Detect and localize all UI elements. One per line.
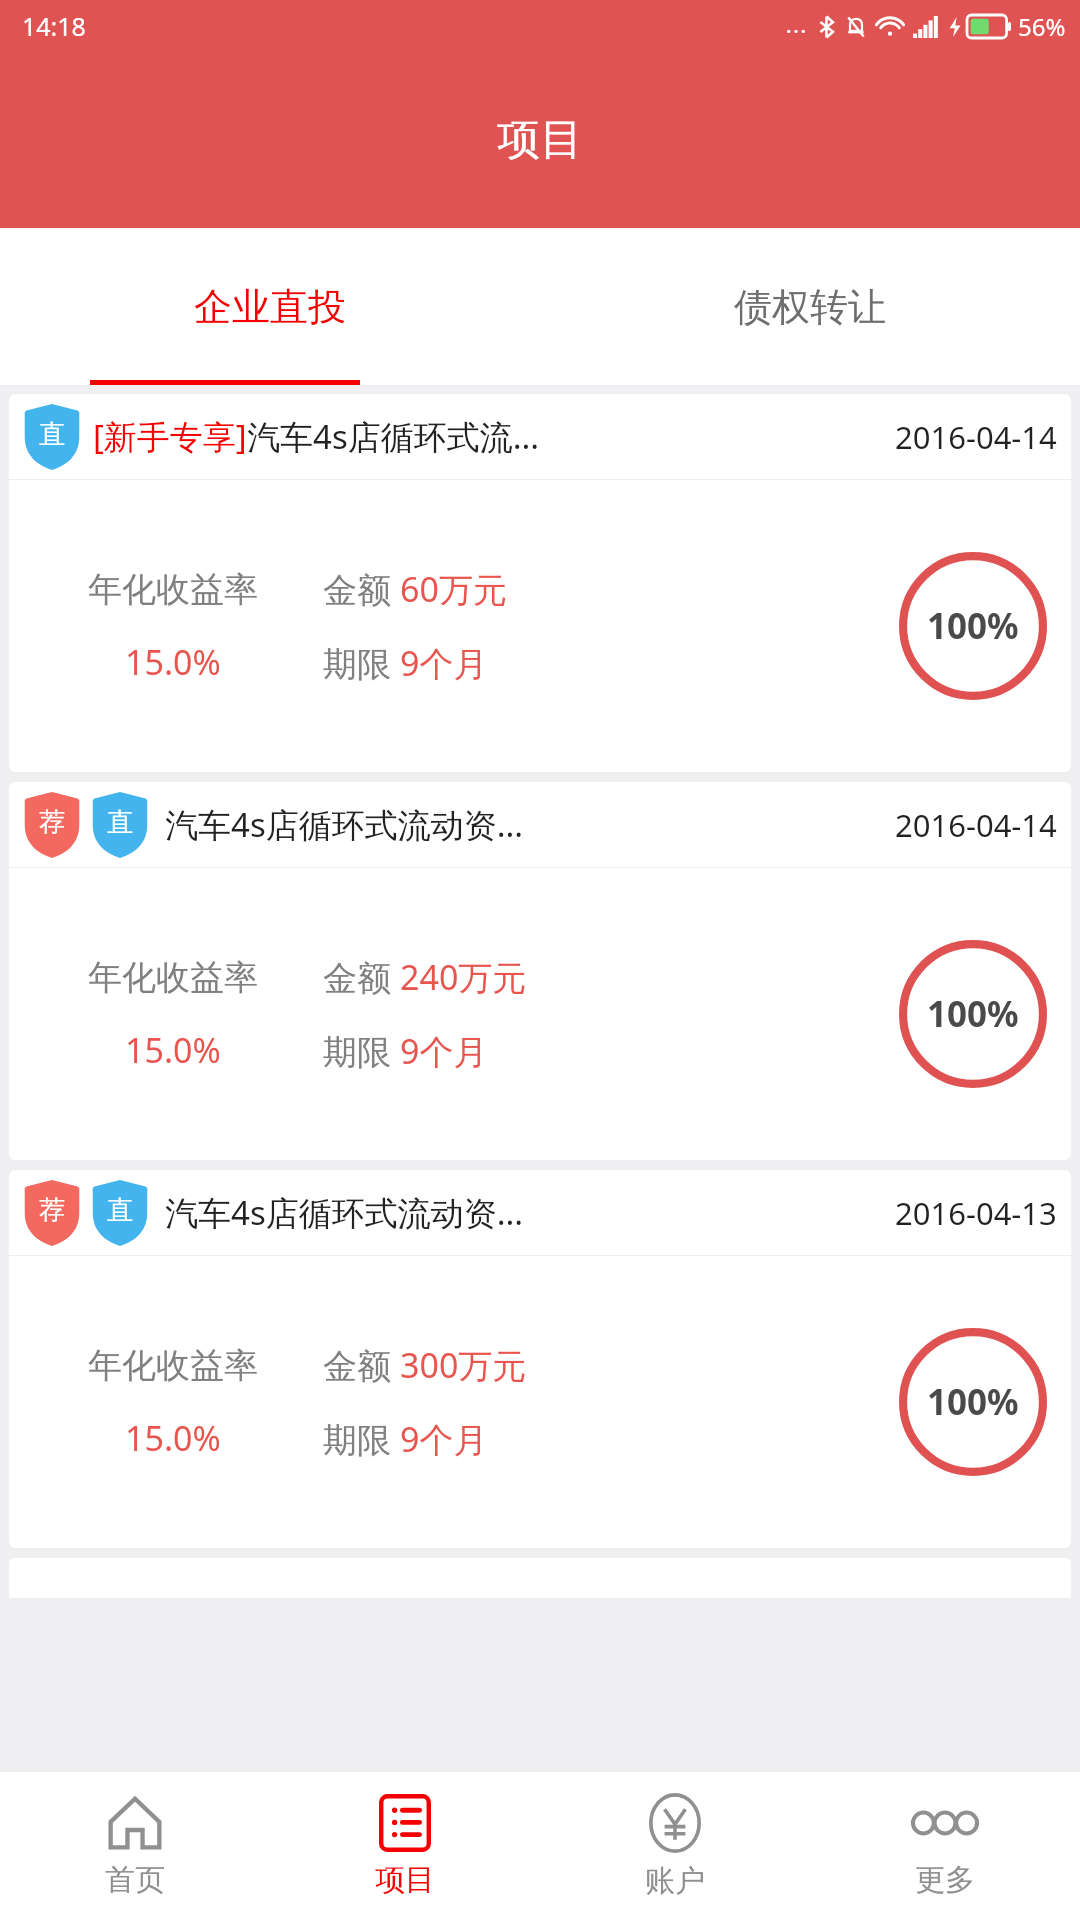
staticText: 期限 [323,1416,400,1462]
staticText: 汽车4s店循环式流动资... [165,1190,524,1235]
staticText: 债权转让 [734,283,886,331]
staticText: 荐 [39,806,65,839]
staticText: 直 [107,1194,133,1227]
staticText: 15.0% [125,1027,221,1073]
staticText: 荐 [39,1194,65,1227]
button[interactable]: 荐 [9,782,1071,1160]
staticText: 100% [927,602,1019,650]
staticText: 年化收益率 [88,956,258,999]
staticText: 2016-04-13 [895,1192,1057,1234]
button[interactable]: 首页 [0,1772,270,1920]
staticText: 15.0% [125,639,221,685]
staticText: 100% [927,990,1019,1038]
button[interactable]: 债权转让 [540,228,1080,385]
staticText: 9个月 [400,1028,488,1074]
staticText: 9个月 [400,640,488,686]
staticText: 金额 [323,1342,400,1388]
staticText: 金额 [323,566,400,612]
button[interactable]: 账户 [540,1772,810,1920]
staticText: 账户 [645,1862,705,1900]
button[interactable]: 荐 [9,1170,1071,1548]
staticText: 项目 [497,113,583,167]
staticText: 14:18 [22,9,86,43]
staticText: 项目 [375,1861,435,1899]
staticText: 期限 [323,640,400,686]
staticText: 首页 [105,1861,165,1899]
staticText: 汽车4s店循环式流... [247,414,540,459]
staticText: 金额 [323,954,400,1000]
staticText: [新手专享] [93,414,247,459]
staticText: 300万元 [400,1342,527,1388]
button[interactable]: 直 [9,394,1071,772]
staticText: 直 [107,806,133,839]
staticText: 年化收益率 [88,1344,258,1387]
staticText: 企业直投 [194,283,346,331]
button[interactable]: 企业直投 [0,228,540,385]
staticText: 60万元 [400,566,507,612]
staticText: 9个月 [400,1416,488,1462]
staticText: 汽车4s店循环式流动资... [165,802,524,847]
button[interactable]: 更多 [810,1772,1080,1920]
staticText: 100% [927,1378,1019,1426]
staticText: 2016-04-14 [895,804,1057,846]
staticText: 更多 [915,1861,975,1899]
staticText: 2016-04-14 [895,416,1057,458]
staticText: 15.0% [125,1415,221,1461]
staticText: 直 [39,418,65,451]
staticText: 期限 [323,1028,400,1074]
button[interactable]: 项目 [270,1772,540,1920]
staticText: 年化收益率 [88,568,258,611]
staticText: 240万元 [400,954,527,1000]
staticText: 56% [1018,10,1066,43]
